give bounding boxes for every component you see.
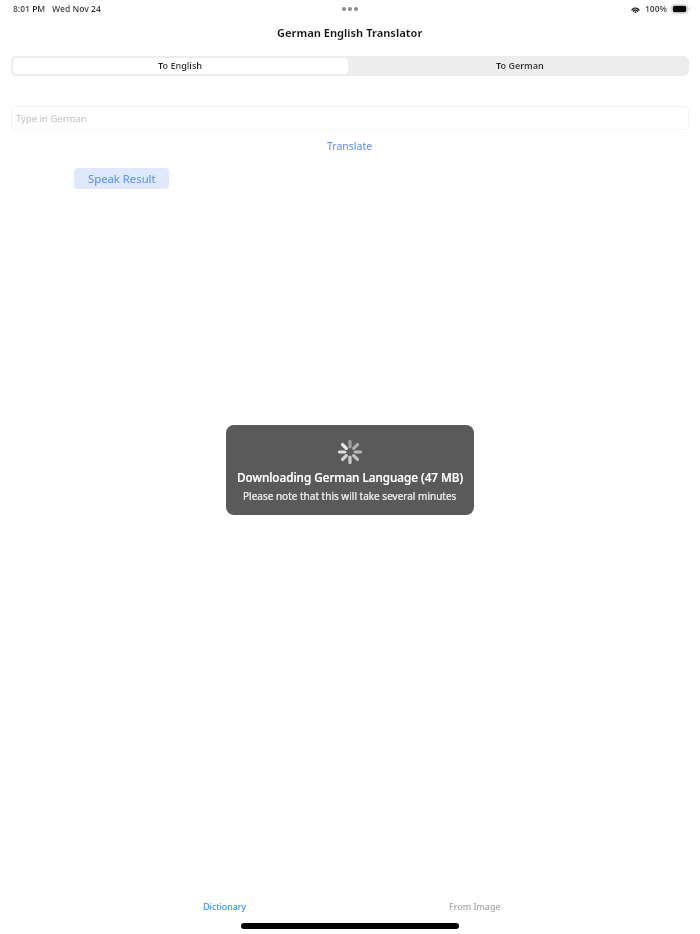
staticText: To English [158,59,203,71]
staticText: Translate [327,139,373,153]
other: Wi-Fi signal [631,5,640,13]
staticText: Downloading German Language (47 MB) [237,469,464,485]
staticText: Type in German [16,112,87,125]
staticText: To German [496,59,544,71]
button[interactable]: To English [13,58,348,74]
staticText: Please note that this will take several … [243,489,457,503]
staticText: 100% [645,3,668,15]
button[interactable]: Dictionary [100,896,350,916]
button[interactable]: From Image [350,896,600,916]
button[interactable]: Type in German [11,106,689,130]
staticText: German English Translator [277,25,423,40]
staticText: Dictionary [203,900,247,912]
other: Loading [338,440,362,464]
staticText: 8:01 PM [13,3,46,15]
staticText: Wed Nov 24 [52,3,101,15]
button[interactable]: Translate [319,137,381,155]
other: More [342,7,358,11]
button[interactable]: To German [350,56,689,76]
button[interactable]: Speak Result [74,168,169,189]
staticText: Speak Result [88,171,156,186]
other: Battery full [671,4,690,14]
staticText: From Image [449,900,501,912]
